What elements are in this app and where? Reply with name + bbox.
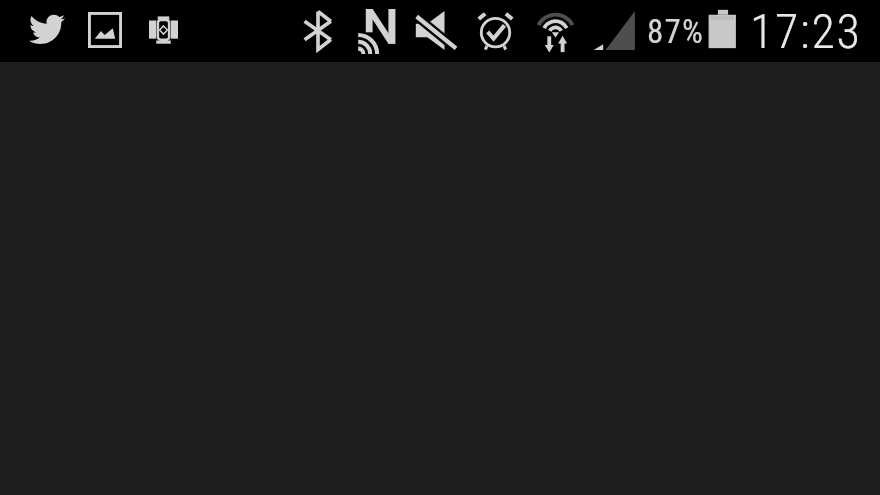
staticText: 87% [647,12,705,51]
button[interactable]: Camera [149,16,178,44]
button[interactable]: Wi-Fi connected [534,9,577,53]
button[interactable]: Alarm set [476,9,515,50]
button[interactable]: Mobile signal [592,10,637,50]
button[interactable]: Screenshot captured [88,12,122,48]
button[interactable]: NFC on [357,9,396,53]
button[interactable]: Bluetooth on [304,10,332,51]
button[interactable]: 17:23 [750,3,875,49]
staticText: 17:23 [750,3,862,49]
button[interactable]: Twitter notification [29,14,65,44]
button[interactable]: 87% [647,11,705,51]
button[interactable]: Battery 87 percent [708,9,738,50]
button[interactable]: Ringer muted [415,11,456,50]
